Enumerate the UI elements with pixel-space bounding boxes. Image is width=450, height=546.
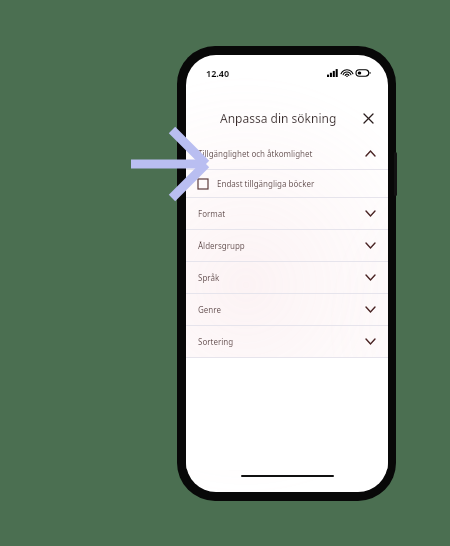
button[interactable]: Språk	[186, 262, 388, 293]
staticText: Tillgänglighet och åtkomlighet	[198, 148, 313, 159]
button[interactable]: Sortering	[186, 326, 388, 357]
staticText: 12.40	[206, 67, 230, 79]
button[interactable]: Stäng	[357, 107, 379, 129]
button[interactable]: Format	[186, 198, 388, 229]
staticText: Anpassa din sökning	[220, 110, 337, 126]
staticText: Språk	[198, 272, 220, 283]
staticText: Format	[198, 208, 226, 219]
staticText: Åldersgrupp	[198, 240, 245, 251]
staticText: Genre	[198, 304, 221, 315]
button[interactable]: Tillgänglighet och åtkomlighet	[186, 138, 388, 169]
button[interactable]: Åldersgrupp	[186, 230, 388, 261]
staticText: Endast tillgängliga böcker	[217, 178, 315, 189]
button[interactable]: Endast tillgängliga böcker	[186, 170, 388, 197]
button[interactable]: Genre	[186, 294, 388, 325]
staticText: Sortering	[198, 336, 234, 347]
